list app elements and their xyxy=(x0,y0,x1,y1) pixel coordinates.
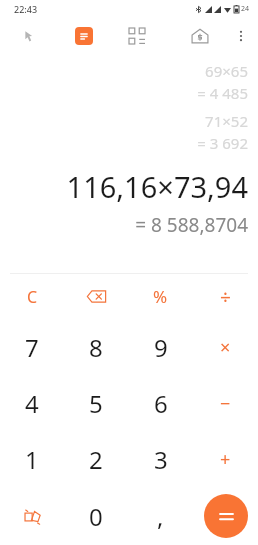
button[interactable]: Units xyxy=(110,17,164,55)
button[interactable]: 2 xyxy=(64,431,128,487)
staticText: 8 xyxy=(89,331,103,364)
button[interactable]: More options xyxy=(224,17,258,55)
staticText: 6 xyxy=(154,387,168,420)
button[interactable]: , xyxy=(128,487,193,545)
button[interactable]: Select xyxy=(0,17,58,55)
staticText: , xyxy=(157,500,164,533)
staticText: × xyxy=(220,335,231,360)
button[interactable]: 9 xyxy=(128,319,193,375)
staticText: 9 xyxy=(154,331,168,364)
staticText: 116,16×73,94 xyxy=(0,167,248,206)
button[interactable]: 0 xyxy=(64,487,128,545)
button[interactable]: 8 xyxy=(64,319,128,375)
button[interactable]: % xyxy=(128,274,193,319)
staticText: 3 xyxy=(154,443,168,476)
staticText: % xyxy=(153,285,168,308)
button[interactable]: × xyxy=(193,319,258,375)
staticText: = 4 485 xyxy=(0,83,248,103)
button[interactable]: 4 xyxy=(0,375,64,431)
staticText: 69×65 xyxy=(0,61,248,81)
staticText: = 8 588,8704 xyxy=(0,212,248,238)
button[interactable]: ÷ xyxy=(193,274,258,319)
staticText: C xyxy=(27,286,38,308)
staticText: 5 xyxy=(89,387,103,420)
staticText: 71×52 xyxy=(0,111,248,131)
button[interactable]: 7 xyxy=(0,319,64,375)
staticText: 0 xyxy=(89,500,103,533)
staticText: 2 xyxy=(89,443,103,476)
staticText: 7 xyxy=(25,331,39,364)
button[interactable]: − xyxy=(193,375,258,431)
button[interactable]: 1 xyxy=(0,431,64,487)
staticText: − xyxy=(220,391,231,416)
staticText: 4 xyxy=(25,387,39,420)
button[interactable]: 3 xyxy=(128,431,193,487)
staticText: = 3 692 xyxy=(0,133,248,153)
staticText: 22:43 xyxy=(14,3,38,15)
button[interactable]: Clear xyxy=(0,274,64,319)
button[interactable]: 6 xyxy=(128,375,193,431)
staticText: 24 xyxy=(241,4,250,14)
button[interactable]: Backspace xyxy=(64,274,128,319)
staticText: ÷ xyxy=(220,284,231,310)
button[interactable]: Calculator mode xyxy=(58,17,110,55)
button[interactable]: Equals xyxy=(204,494,248,538)
staticText: + xyxy=(220,447,231,472)
button[interactable]: + xyxy=(193,431,258,487)
button[interactable]: Convert xyxy=(0,487,64,545)
button[interactable]: 5 xyxy=(64,375,128,431)
staticText: 1 xyxy=(25,443,39,476)
button[interactable]: Mortgage xyxy=(176,17,224,55)
